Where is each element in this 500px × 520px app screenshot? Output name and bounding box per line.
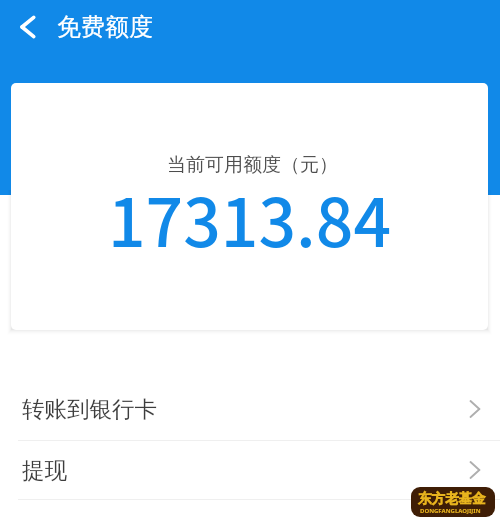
staticText: 免费额度: [57, 12, 153, 42]
staticText: 东方老基金: [418, 490, 486, 507]
staticText: 转账到银行卡: [22, 395, 157, 423]
staticText: 17313.84: [108, 170, 392, 266]
button[interactable]: 提现: [0, 441, 500, 499]
staticText: 当前可用额度（元）: [167, 153, 338, 177]
button[interactable]: 转账到银行卡: [0, 377, 500, 440]
staticText: DONGFANGLAOJIJIN: [420, 507, 481, 515]
staticText: 提现: [22, 456, 67, 484]
button[interactable]: Back: [0, 0, 53, 53]
